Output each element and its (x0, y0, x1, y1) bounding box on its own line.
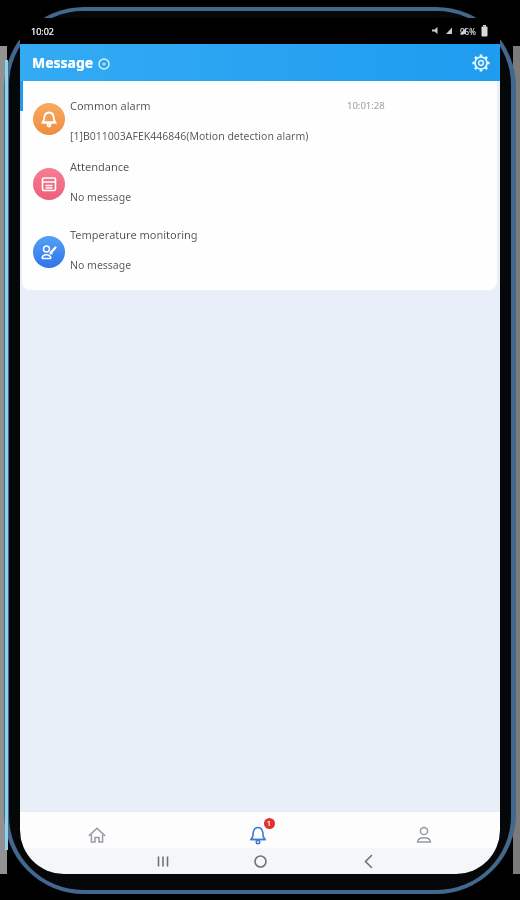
staticText: 96% (460, 26, 476, 37)
staticText: No message (70, 190, 132, 204)
staticText: 10:02 (31, 25, 55, 37)
staticText: Attendance (70, 159, 130, 174)
button[interactable] (405, 811, 443, 848)
staticText: 1 (267, 819, 272, 829)
button[interactable]: Common alarm (22, 87, 497, 151)
staticText: [1]B011003AFEK446846(Motion detection al… (70, 129, 309, 143)
staticText: No message (70, 258, 132, 272)
button[interactable] (78, 811, 116, 848)
button[interactable]: Temperature monitoring (22, 222, 497, 286)
staticText: Common alarm (70, 98, 151, 113)
button[interactable] (350, 848, 386, 874)
staticText: 10:01:28 (347, 99, 385, 112)
staticText: Message (32, 53, 94, 72)
button[interactable]: Attendance (22, 153, 497, 217)
button[interactable] (467, 49, 495, 77)
button[interactable]: 1 (239, 811, 279, 848)
button[interactable] (242, 848, 278, 874)
staticText: Temperature monitoring (70, 227, 198, 242)
button[interactable] (145, 848, 181, 874)
